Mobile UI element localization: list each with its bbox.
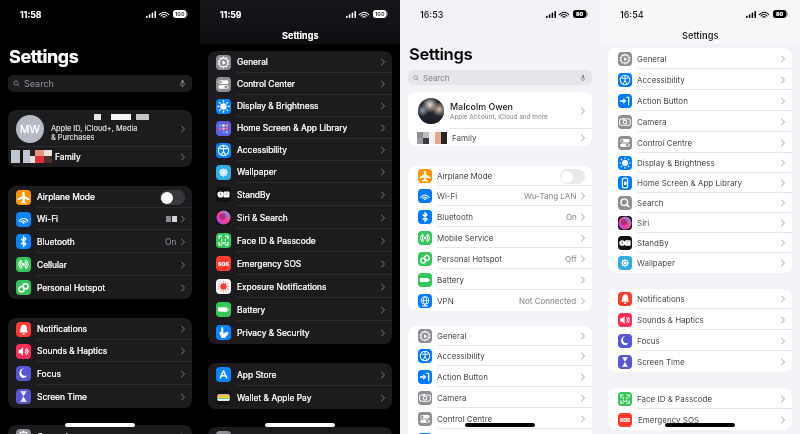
- button[interactable]: Family: [408, 129, 592, 146]
- button[interactable]: Airplane Mode: [8, 186, 192, 208]
- button[interactable]: General: [8, 425, 192, 434]
- staticText: Display & Brightness: [237, 101, 381, 111]
- button[interactable]: Personal Hotspot: [408, 248, 592, 269]
- button[interactable]: StandBy: [608, 233, 792, 253]
- staticText: VPN: [437, 296, 519, 306]
- staticText: Notifications: [37, 324, 181, 334]
- staticText: MW: [20, 123, 40, 136]
- button[interactable]: Siri & Search: [208, 206, 392, 229]
- button[interactable]: StandBy: [208, 183, 392, 206]
- staticText: Off: [565, 254, 577, 264]
- staticText: 100: [375, 11, 385, 18]
- button[interactable]: MW: [8, 110, 192, 147]
- button[interactable]: Mobile Service: [408, 227, 592, 248]
- button[interactable]: Focus: [8, 362, 192, 385]
- staticText: Action Button: [637, 96, 781, 106]
- button[interactable]: Wi-Fi: [408, 186, 592, 206]
- staticText: Home Screen & App Library: [637, 178, 781, 188]
- staticText: Family: [452, 133, 581, 143]
- button[interactable]: Screen Time: [8, 385, 192, 408]
- button[interactable]: Toggle: [160, 190, 185, 205]
- button[interactable]: VPN: [408, 290, 592, 311]
- staticText: SOS: [620, 417, 631, 423]
- button[interactable]: Siri: [608, 213, 792, 233]
- button[interactable]: Control Centre: [608, 132, 792, 153]
- button[interactable]: Face ID & Passcode: [608, 388, 792, 409]
- button[interactable]: Exposure Notifications: [208, 275, 392, 298]
- button[interactable]: Bluetooth: [408, 206, 592, 227]
- button[interactable]: Action Button: [608, 90, 792, 111]
- button[interactable]: Focus: [608, 330, 792, 351]
- button[interactable]: Accessibility: [408, 346, 592, 366]
- button[interactable]: Display & Brightness: [208, 95, 392, 117]
- button[interactable]: Camera: [608, 111, 792, 132]
- staticText: Emergency SOS: [638, 415, 781, 425]
- button[interactable]: Control Center: [208, 73, 392, 95]
- button[interactable]: Display & Brightness: [608, 153, 792, 173]
- button[interactable]: Airplane Mode: [408, 166, 592, 186]
- staticText: StandBy: [237, 190, 381, 200]
- button[interactable]: Search: [8, 75, 192, 92]
- button[interactable]: Wallet & Apple Pay: [208, 386, 392, 409]
- button[interactable]: Accessibility: [208, 139, 392, 161]
- button[interactable]: Toggle: [560, 169, 585, 184]
- button[interactable]: Malcolm Owen: [408, 92, 592, 129]
- button[interactable]: Notifications: [8, 318, 192, 340]
- button[interactable]: Battery: [208, 298, 392, 321]
- button[interactable]: Battery: [408, 269, 592, 290]
- staticText: Wi-Fi: [437, 191, 524, 201]
- button[interactable]: SOS: [608, 409, 792, 430]
- button[interactable]: Bluetooth: [8, 230, 192, 253]
- staticText: Screen Time: [37, 392, 181, 402]
- button[interactable]: General: [208, 51, 392, 73]
- button[interactable]: Home Screen & App Library: [608, 173, 792, 193]
- button[interactable]: Action Button: [408, 366, 592, 387]
- button[interactable]: Notifications: [608, 289, 792, 309]
- staticText: Sounds & Haptics: [37, 346, 181, 356]
- button[interactable]: SOS: [208, 252, 392, 275]
- button[interactable]: Control Centre: [408, 408, 592, 429]
- button[interactable]: Personal Hotspot: [8, 276, 192, 299]
- button[interactable]: Screen Time: [608, 351, 792, 372]
- staticText: Search: [423, 73, 450, 83]
- button[interactable]: Sounds & Haptics: [8, 340, 192, 362]
- button[interactable]: Search: [408, 70, 592, 85]
- staticText: Display & Brightness: [637, 158, 781, 168]
- staticText: Bluetooth: [437, 212, 566, 222]
- staticText: Face ID & Passcode: [237, 236, 381, 246]
- button[interactable]: Family: [8, 147, 192, 167]
- button[interactable]: Home Screen & App Library: [208, 117, 392, 139]
- staticText: Wallet & Apple Pay: [237, 393, 381, 403]
- staticText: 16:53: [420, 9, 444, 20]
- button[interactable]: Wallpaper: [208, 161, 392, 183]
- staticText: 11:59: [220, 9, 242, 20]
- button[interactable]: Privacy & Security: [208, 321, 392, 344]
- button[interactable]: Passwords: [208, 427, 392, 434]
- button[interactable]: Display & Brightness: [408, 429, 592, 434]
- staticText: Airplane Mode: [37, 192, 160, 202]
- button[interactable]: Accessibility: [608, 69, 792, 90]
- staticText: Siri & Search: [237, 213, 381, 223]
- staticText: General: [37, 432, 181, 434]
- button[interactable]: General: [408, 326, 592, 346]
- button[interactable]: Camera: [408, 387, 592, 408]
- staticText: Face ID & Passcode: [637, 394, 781, 404]
- staticText: Battery: [237, 305, 381, 315]
- button[interactable]: App Store: [208, 363, 392, 386]
- staticText: 11:58: [20, 9, 42, 20]
- staticText: Notifications: [637, 294, 781, 304]
- staticText: Bluetooth: [37, 237, 165, 247]
- staticText: Malcolm Owen: [450, 101, 513, 112]
- staticText: Airplane Mode: [437, 171, 560, 181]
- button[interactable]: Cellular: [8, 253, 192, 276]
- staticText: Settings: [682, 30, 719, 41]
- button[interactable]: Sounds & Haptics: [608, 309, 792, 330]
- button[interactable]: General: [608, 48, 792, 69]
- button[interactable]: Search: [608, 193, 792, 213]
- button[interactable]: Wi-Fi: [8, 208, 192, 230]
- button[interactable]: Face ID & Passcode: [208, 229, 392, 252]
- button[interactable]: Wallpaper: [608, 253, 792, 273]
- staticText: Wu-Tang LAN: [524, 191, 577, 201]
- staticText: Wi-Fi: [37, 214, 166, 224]
- staticText: Focus: [637, 336, 781, 346]
